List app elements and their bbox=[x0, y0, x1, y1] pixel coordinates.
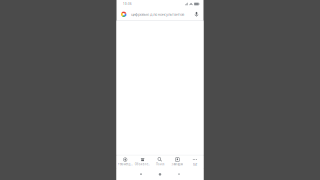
staticText: цифровые для консультантов bbox=[131, 12, 184, 17]
staticText: Ещё bbox=[193, 162, 197, 166]
button[interactable]: Recent apps bbox=[175, 164, 183, 180]
button[interactable]: Back bbox=[137, 164, 145, 180]
staticText: Рекоменд… bbox=[118, 162, 133, 166]
button[interactable]: Home bbox=[156, 164, 164, 180]
button[interactable]: Закладки bbox=[169, 155, 186, 168]
button[interactable]: Ещё bbox=[186, 155, 203, 168]
staticText: Объявления bbox=[135, 162, 150, 166]
button[interactable]: Объявления bbox=[134, 155, 151, 168]
button[interactable]: цифровые для консультантов bbox=[116, 8, 203, 20]
staticText: Закладки bbox=[171, 162, 183, 166]
staticText: Поиск bbox=[156, 162, 164, 166]
button[interactable]: Рекоменд… bbox=[116, 155, 134, 168]
button[interactable]: Поиск bbox=[151, 155, 169, 168]
staticText: 10:36 bbox=[123, 2, 132, 6]
